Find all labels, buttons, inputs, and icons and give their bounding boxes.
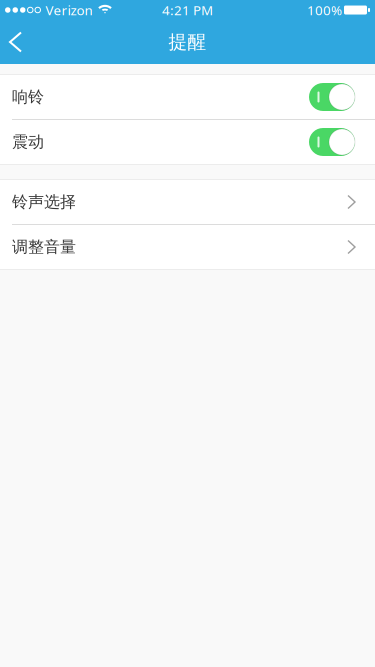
- staticText: 4:21 PM: [162, 1, 213, 19]
- staticText: 100%: [307, 1, 342, 19]
- staticText: 响铃: [12, 87, 44, 107]
- staticText: 提醒: [168, 30, 206, 53]
- staticText: 铃声选择: [12, 192, 76, 212]
- staticText: 震动: [12, 132, 44, 152]
- button[interactable]: 铃声选择: [0, 180, 375, 224]
- button[interactable]: 震动: [0, 120, 375, 164]
- staticText: 调整音量: [12, 237, 76, 257]
- button[interactable]: 调整音量: [0, 225, 375, 269]
- button[interactable]: Back: [0, 21, 43, 62]
- staticText: Verizon: [45, 1, 92, 19]
- button[interactable]: 响铃: [0, 75, 375, 119]
